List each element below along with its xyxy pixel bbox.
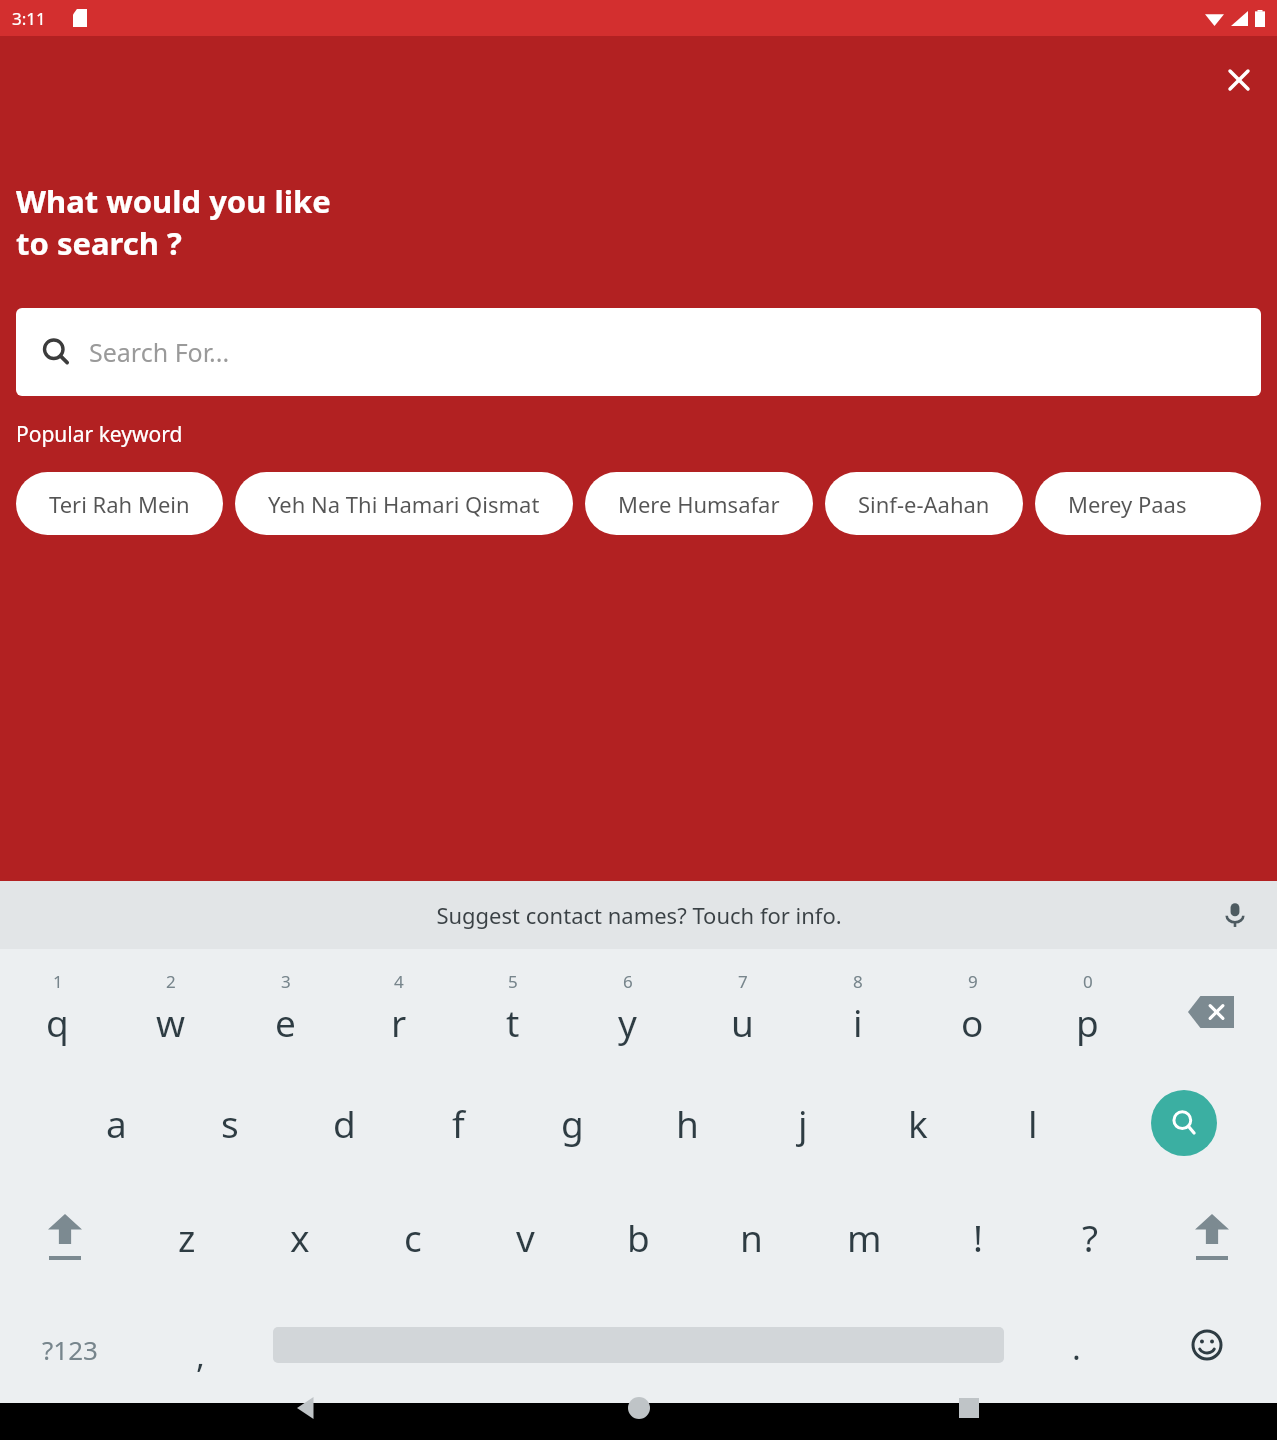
button[interactable]: Search For... [16, 308, 1261, 396]
button[interactable]: f [401, 1067, 515, 1179]
staticText: y [618, 997, 637, 1047]
button[interactable]: l [975, 1067, 1090, 1179]
staticText: Popular keyword [16, 420, 183, 449]
staticText: w [156, 997, 186, 1047]
staticText: p [1076, 997, 1099, 1047]
button[interactable]: Shift [0, 1179, 130, 1294]
button[interactable]: b [582, 1179, 695, 1294]
button[interactable]: Mere Humsafar [585, 472, 813, 535]
staticText: s [221, 1098, 239, 1148]
staticText: x [290, 1212, 310, 1262]
button[interactable]: 8 [800, 949, 915, 1067]
staticText: z [178, 1212, 196, 1262]
button[interactable]: z [130, 1179, 243, 1294]
button[interactable]: ? [1034, 1179, 1147, 1294]
staticText: Yeh Na Thi Hamari Qismat [268, 489, 540, 519]
button[interactable]: ! [921, 1179, 1034, 1294]
button[interactable]: Search [1090, 1067, 1277, 1179]
button[interactable]: 2 [114, 949, 228, 1067]
staticText: f [452, 1098, 465, 1148]
staticText: ?123 [42, 1332, 98, 1367]
button[interactable]: . [1015, 1294, 1137, 1404]
button[interactable]: 1 [0, 949, 114, 1067]
staticText: 6 [623, 970, 633, 993]
staticText: ! [973, 1212, 983, 1262]
staticText: 2 [166, 970, 176, 993]
staticText: ? [1082, 1212, 1099, 1262]
staticText: e [275, 997, 296, 1047]
button[interactable]: j [745, 1067, 860, 1179]
button[interactable]: Shift [1147, 1179, 1277, 1294]
staticText: o [961, 997, 984, 1047]
button[interactable]: Voice input [1213, 893, 1257, 937]
staticText: Sinf-e-Aahan [858, 489, 990, 519]
button[interactable]: 3 [228, 949, 342, 1067]
button[interactable]: Sinf-e-Aahan [825, 472, 1023, 535]
button[interactable]: a [59, 1067, 173, 1179]
staticText: 7 [738, 970, 748, 993]
button[interactable]: Home [617, 1389, 661, 1426]
button[interactable]: Space [261, 1294, 1015, 1404]
button[interactable]: Back [286, 1389, 330, 1426]
button[interactable]: Teri Rah Mein [16, 472, 223, 535]
button[interactable]: Emoji [1137, 1294, 1277, 1404]
button[interactable]: m [808, 1179, 921, 1294]
staticText: Mere Humsafar [618, 489, 780, 519]
button[interactable]: 6 [570, 949, 685, 1067]
staticText: t [506, 997, 520, 1047]
staticText: Teri Rah Mein [49, 489, 190, 519]
button[interactable]: x [243, 1179, 356, 1294]
staticText: 0 [1083, 970, 1093, 993]
button[interactable]: k [860, 1067, 975, 1179]
staticText: b [627, 1212, 650, 1262]
button[interactable]: Merey Paas Tum Ho [1035, 472, 1261, 535]
staticText: , [196, 1333, 205, 1378]
button[interactable]: d [287, 1067, 401, 1179]
button[interactable]: n [695, 1179, 808, 1294]
button[interactable]: h [630, 1067, 745, 1179]
button[interactable]: 7 [685, 949, 800, 1067]
staticText: Search For... [89, 335, 230, 369]
staticText: a [106, 1098, 127, 1148]
staticText: j [798, 1098, 808, 1148]
staticText: c [404, 1212, 422, 1262]
staticText: 3 [281, 970, 291, 993]
staticText: 5 [508, 970, 518, 993]
button[interactable]: 4 [342, 949, 456, 1067]
staticText: 1 [53, 970, 63, 993]
button[interactable]: Close [1215, 56, 1263, 104]
staticText: m [847, 1212, 882, 1262]
staticText: 9 [968, 970, 978, 993]
staticText: q [46, 997, 69, 1047]
staticText: Merey Paas Tum Ho [1068, 489, 1228, 519]
staticText: i [853, 997, 863, 1047]
staticText: r [391, 997, 407, 1047]
button[interactable]: c [356, 1179, 469, 1294]
staticText: n [740, 1212, 763, 1262]
button[interactable]: , [139, 1294, 261, 1404]
staticText: k [908, 1098, 928, 1148]
button[interactable]: 5 [456, 949, 570, 1067]
staticText: h [676, 1098, 699, 1148]
staticText: u [731, 997, 754, 1047]
button[interactable]: Backspace [1145, 949, 1277, 1067]
button[interactable]: g [515, 1067, 630, 1179]
button[interactable]: v [469, 1179, 582, 1294]
button[interactable]: Recents [947, 1389, 991, 1426]
staticText: . [1072, 1325, 1081, 1370]
staticText: 3:11 [12, 7, 46, 30]
staticText: v [516, 1212, 535, 1262]
staticText: 8 [853, 970, 863, 993]
staticText: What would you like to search ? [16, 180, 331, 264]
button[interactable]: Yeh Na Thi Hamari Qismat [235, 472, 573, 535]
button[interactable]: 9 [915, 949, 1030, 1067]
button[interactable]: s [173, 1067, 287, 1179]
button[interactable]: 0 [1030, 949, 1145, 1067]
staticText: l [1028, 1098, 1038, 1148]
staticText: d [333, 1098, 356, 1148]
staticText: Suggest contact names? Touch for info. [436, 900, 842, 930]
button[interactable]: ?123 [0, 1294, 139, 1404]
staticText: g [561, 1098, 584, 1148]
staticText: 4 [394, 970, 404, 993]
